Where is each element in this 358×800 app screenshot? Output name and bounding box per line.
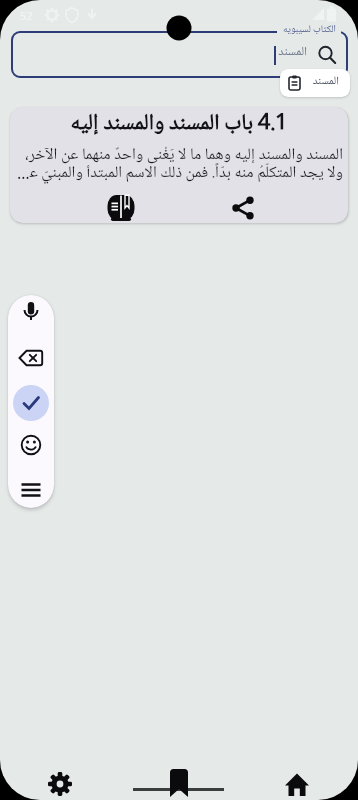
button[interactable] bbox=[15, 342, 47, 374]
button[interactable] bbox=[15, 298, 47, 330]
staticText: 52 bbox=[20, 8, 33, 23]
button[interactable] bbox=[283, 770, 311, 798]
button[interactable] bbox=[15, 474, 47, 506]
button[interactable] bbox=[101, 188, 141, 223]
staticText: الكتاب لسيبويه bbox=[282, 22, 336, 36]
button[interactable] bbox=[15, 429, 47, 461]
button[interactable] bbox=[223, 188, 263, 223]
button[interactable] bbox=[168, 768, 190, 798]
staticText: المسند والمسند إليه وهما ما لا يَغْنى وا… bbox=[15, 144, 343, 184]
button[interactable]: المسند bbox=[280, 69, 350, 97]
staticText: المسند bbox=[278, 44, 307, 61]
button[interactable] bbox=[13, 385, 49, 421]
staticText: 4.1 باب المسند والمسند إليه bbox=[10, 108, 348, 138]
button[interactable] bbox=[46, 770, 74, 798]
button[interactable]: المسند bbox=[11, 31, 348, 78]
staticText: المسند bbox=[312, 74, 339, 90]
button[interactable]: 4.1 باب المسند والمسند إليه bbox=[10, 107, 348, 223]
